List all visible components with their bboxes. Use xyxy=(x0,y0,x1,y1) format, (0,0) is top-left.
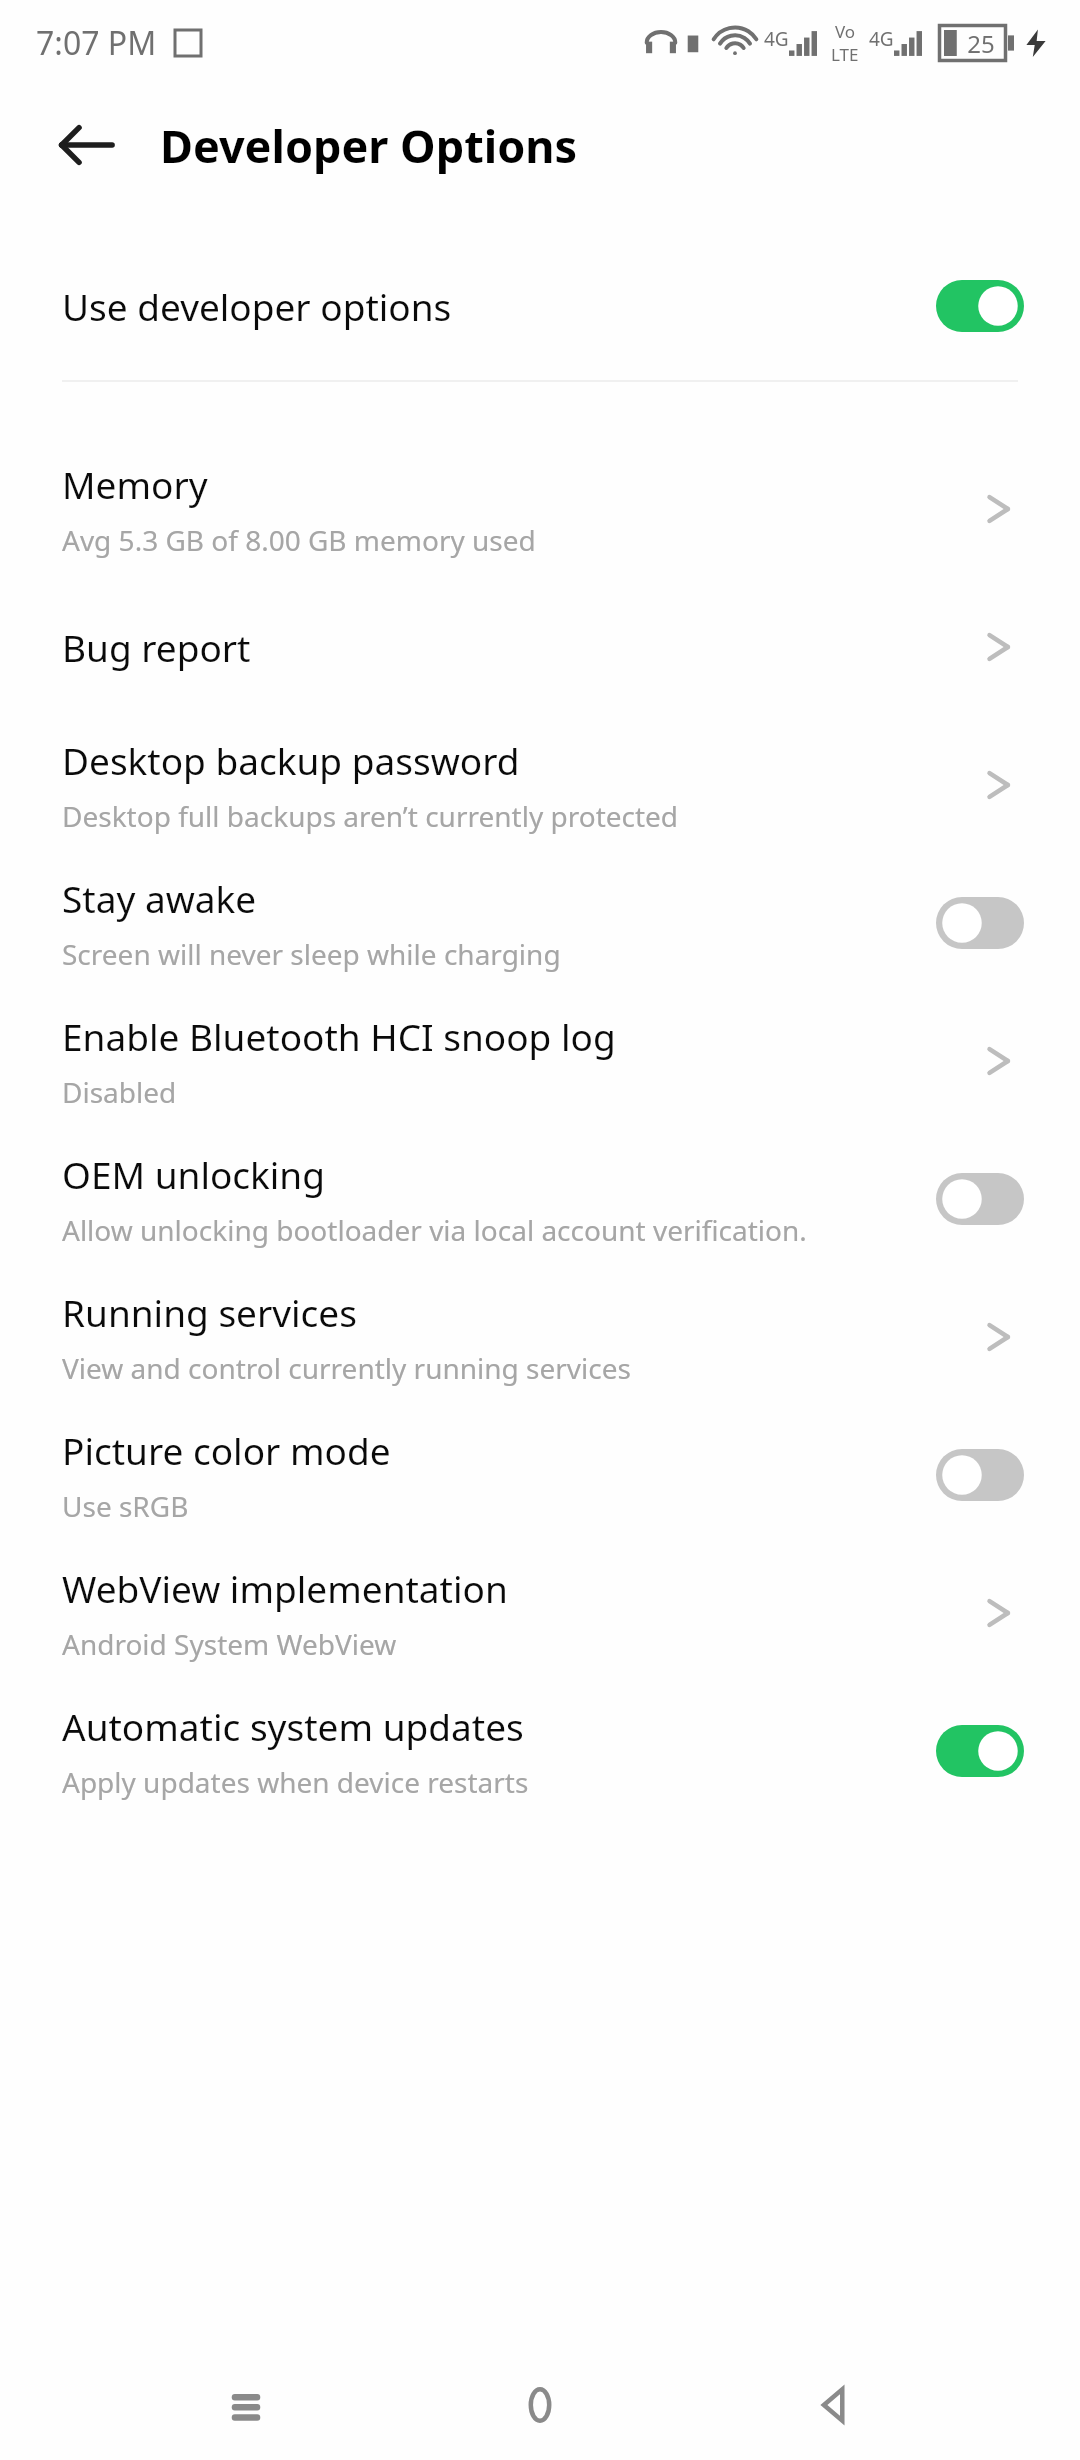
button[interactable]: Toggle on xyxy=(936,1725,1024,1777)
button[interactable]: Stay awake xyxy=(0,854,1080,992)
staticText: Avg 5.3 GB of 8.00 GB memory used xyxy=(62,521,536,559)
other: Open xyxy=(978,1038,1024,1084)
button[interactable]: WebView implementation xyxy=(0,1544,1080,1682)
button[interactable]: Enable Bluetooth HCI snoop log xyxy=(0,992,1080,1130)
staticText: 4G xyxy=(764,26,789,52)
button[interactable]: Memory xyxy=(0,440,1080,578)
staticText: Apply updates when device restarts xyxy=(62,1763,529,1801)
staticText: OEM unlocking xyxy=(62,1149,325,1199)
staticText: Memory xyxy=(62,459,208,509)
button[interactable]: Back xyxy=(786,2357,882,2453)
other: Open xyxy=(978,624,1024,670)
button[interactable]: Toggle on xyxy=(936,280,1024,332)
staticText: 7:07 PM xyxy=(36,21,157,65)
button[interactable]: Toggle off xyxy=(936,897,1024,949)
staticText: Enable Bluetooth HCI snoop log xyxy=(62,1011,616,1061)
button[interactable]: Automatic system updates xyxy=(0,1682,1080,1820)
button[interactable]: Back xyxy=(48,107,124,183)
staticText: View and control currently running servi… xyxy=(62,1349,631,1387)
button[interactable]: Bug report xyxy=(0,578,1080,716)
staticText: Stay awake xyxy=(62,873,257,923)
button[interactable]: OEM unlocking xyxy=(0,1130,1080,1268)
staticText: Picture color mode xyxy=(62,1425,391,1475)
staticText: Use sRGB xyxy=(62,1487,189,1525)
staticText: WebView implementation xyxy=(62,1563,508,1613)
button[interactable]: Toggle off xyxy=(936,1449,1024,1501)
staticText: Disabled xyxy=(62,1073,177,1111)
staticText: Android System WebView xyxy=(62,1625,397,1663)
other: Open xyxy=(978,486,1024,532)
staticText: Developer Options xyxy=(160,115,578,176)
staticText: 25 xyxy=(967,27,995,60)
staticText: Vo xyxy=(835,20,856,43)
other: Open xyxy=(978,1590,1024,1636)
staticText: Allow unlocking bootloader via local acc… xyxy=(62,1211,807,1249)
button[interactable]: Use developer options xyxy=(0,232,1080,380)
other: Open xyxy=(978,1314,1024,1360)
button[interactable]: Running services xyxy=(0,1268,1080,1406)
staticText: LTE xyxy=(831,43,859,66)
staticText: Automatic system updates xyxy=(62,1701,524,1751)
button[interactable]: Recent apps xyxy=(198,2357,294,2453)
staticText: Screen will never sleep while charging xyxy=(62,935,561,973)
staticText: Desktop full backups aren’t currently pr… xyxy=(62,797,679,835)
other: Open xyxy=(978,762,1024,808)
button[interactable]: Toggle off xyxy=(936,1173,1024,1225)
button[interactable]: Picture color mode xyxy=(0,1406,1080,1544)
staticText: Desktop backup password xyxy=(62,735,520,785)
staticText: 4G xyxy=(869,26,894,52)
staticText: Running services xyxy=(62,1287,357,1337)
staticText: Bug report xyxy=(62,622,251,672)
staticText: Use developer options xyxy=(62,281,452,331)
button[interactable]: Home xyxy=(492,2357,588,2453)
button[interactable]: Desktop backup password xyxy=(0,716,1080,854)
